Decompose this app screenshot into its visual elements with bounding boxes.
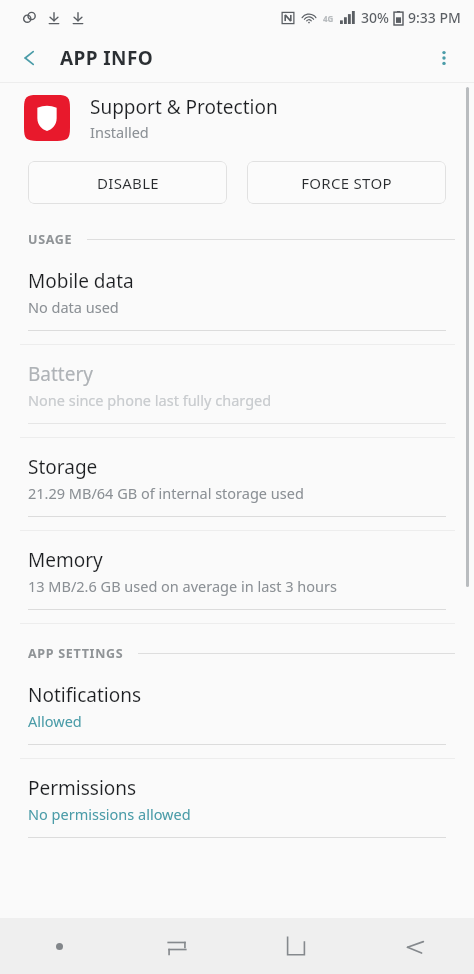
- staticText: None since phone last fully charged: [28, 390, 272, 410]
- button[interactable]: Memory: [0, 531, 474, 610]
- staticText: Allowed: [28, 711, 82, 731]
- staticText: Support & Protection: [90, 94, 278, 120]
- staticText: 30%: [361, 8, 389, 27]
- button[interactable]: Mobile data: [0, 252, 474, 331]
- staticText: USAGE: [28, 231, 73, 248]
- staticText: No data used: [28, 297, 119, 317]
- staticText: 9:33 PM: [408, 8, 461, 27]
- button[interactable]: Home: [236, 918, 355, 974]
- staticText: APP SETTINGS: [28, 645, 124, 662]
- button[interactable]: More options: [422, 36, 466, 80]
- staticText: Mobile data: [28, 268, 134, 294]
- button[interactable]: Permissions: [0, 759, 474, 838]
- staticText: 4G: [323, 13, 334, 23]
- button[interactable]: FORCE STOP: [247, 161, 446, 204]
- staticText: Permissions: [28, 775, 137, 801]
- staticText: FORCE STOP: [301, 173, 392, 193]
- button[interactable]: Back: [8, 36, 52, 80]
- button[interactable]: Notifications: [0, 666, 474, 745]
- button[interactable]: Storage: [0, 438, 474, 517]
- button[interactable]: DISABLE: [28, 161, 227, 204]
- staticText: Storage: [28, 454, 98, 480]
- button[interactable]: Back: [355, 918, 474, 974]
- staticText: DISABLE: [97, 173, 159, 193]
- staticText: No permissions allowed: [28, 804, 191, 824]
- staticText: 13 MB/2.6 GB used on average in last 3 h…: [28, 576, 337, 596]
- staticText: Battery: [28, 361, 93, 387]
- button[interactable]: Recents: [118, 918, 236, 974]
- staticText: APP INFO: [60, 45, 154, 71]
- staticText: 21.29 MB/64 GB of internal storage used: [28, 483, 304, 503]
- staticText: Memory: [28, 547, 103, 573]
- button[interactable]: Battery: [0, 345, 474, 424]
- staticText: Installed: [90, 122, 149, 142]
- staticText: Notifications: [28, 682, 142, 708]
